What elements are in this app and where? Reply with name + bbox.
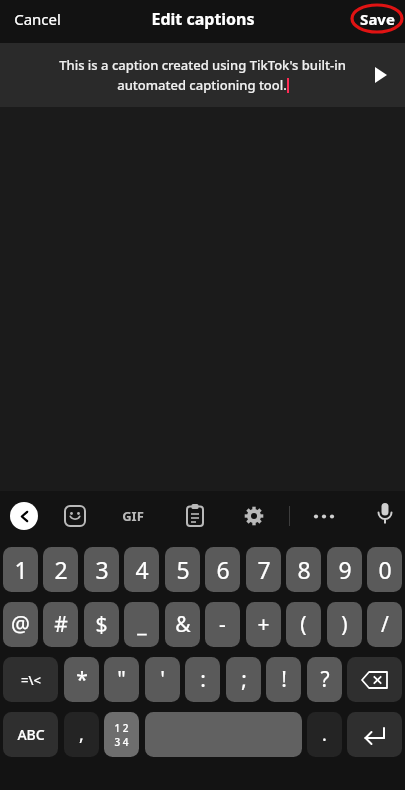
staticText: 1 <box>14 554 28 585</box>
button[interactable]: 7 <box>246 547 281 592</box>
button[interactable]: " <box>104 657 139 702</box>
button[interactable]: GIF <box>122 507 144 525</box>
button[interactable] <box>186 504 204 527</box>
staticText: Cancel <box>14 9 61 29</box>
button[interactable]: 3 <box>84 547 119 592</box>
button[interactable] <box>347 657 402 702</box>
staticText: * <box>76 665 88 694</box>
staticText: =\< <box>21 671 41 689</box>
button[interactable]: 1 <box>3 547 38 592</box>
button[interactable]: 4 <box>124 547 159 592</box>
button[interactable]: + <box>246 602 281 647</box>
button[interactable]: ) <box>327 602 362 647</box>
staticText: : <box>200 665 206 694</box>
staticText: ) <box>341 610 348 639</box>
button[interactable]: @ <box>3 602 38 647</box>
staticText: - <box>219 610 226 639</box>
button[interactable]: ? <box>307 657 342 702</box>
button[interactable] <box>64 505 86 527</box>
staticText: 3 <box>95 554 109 585</box>
button[interactable]: 8 <box>286 547 321 592</box>
button[interactable]: Cancel <box>6 1 69 37</box>
staticText: $ <box>95 610 108 639</box>
staticText: ABC <box>17 725 45 744</box>
button[interactable] <box>375 67 387 83</box>
button[interactable]: 6 <box>205 547 240 592</box>
staticText: @ <box>11 610 30 639</box>
staticText: 7 <box>257 554 271 585</box>
staticText: Edit captions <box>151 8 255 30</box>
button[interactable]: / <box>367 602 402 647</box>
button[interactable]: $ <box>84 602 119 647</box>
button[interactable]: - <box>205 602 240 647</box>
button[interactable]: * <box>64 657 99 702</box>
button[interactable] <box>313 514 335 519</box>
staticText: 2 <box>54 554 68 585</box>
button[interactable]: ( <box>286 602 321 647</box>
button[interactable] <box>347 712 402 757</box>
staticText: & <box>175 610 191 639</box>
staticText: + <box>257 610 270 639</box>
staticText: " <box>117 665 126 694</box>
staticText: Save <box>360 9 395 29</box>
staticText: ; <box>241 665 247 694</box>
staticText: 9 <box>338 554 352 585</box>
button[interactable]: # <box>43 602 78 647</box>
staticText: ( <box>300 610 307 639</box>
button[interactable] <box>375 503 395 529</box>
button[interactable]: . <box>307 712 342 757</box>
button[interactable]: Save <box>354 3 401 35</box>
button[interactable]: 0 <box>367 547 402 592</box>
button[interactable]: , <box>64 712 99 757</box>
staticText: , <box>79 722 84 747</box>
button[interactable]: 2 <box>43 547 78 592</box>
staticText: GIF <box>122 507 144 525</box>
staticText: 4 <box>135 554 149 585</box>
button[interactable]: ABC <box>3 712 58 757</box>
button[interactable]: =\< <box>3 657 58 702</box>
staticText: 3 4 <box>114 735 129 749</box>
button[interactable]: ; <box>226 657 261 702</box>
staticText: 6 <box>216 554 230 585</box>
staticText: 1 2 <box>114 721 129 735</box>
button[interactable]: This is a caption created using TikTok's… <box>0 43 405 107</box>
staticText: _ <box>137 610 147 639</box>
staticText: . <box>322 722 327 747</box>
staticText: / <box>381 610 389 639</box>
button[interactable]: ! <box>266 657 301 702</box>
staticText: This is a caption created using TikTok's… <box>59 56 346 74</box>
button[interactable]: & <box>165 602 200 647</box>
button[interactable] <box>243 505 265 527</box>
staticText: ? <box>320 665 330 694</box>
staticText: ' <box>160 665 165 694</box>
button[interactable]: 5 <box>165 547 200 592</box>
button[interactable]: : <box>185 657 220 702</box>
button[interactable] <box>10 502 38 530</box>
staticText: # <box>54 610 68 639</box>
button[interactable]: ' <box>145 657 180 702</box>
button[interactable]: 9 <box>327 547 362 592</box>
button[interactable] <box>145 712 302 757</box>
button[interactable]: _ <box>124 602 159 647</box>
staticText: ! <box>281 665 287 694</box>
staticText: 0 <box>378 554 392 585</box>
staticText: 5 <box>176 554 190 585</box>
staticText: automated captioning tool. <box>117 76 287 94</box>
staticText: 8 <box>297 554 311 585</box>
button[interactable]: 1 2 <box>104 712 139 757</box>
